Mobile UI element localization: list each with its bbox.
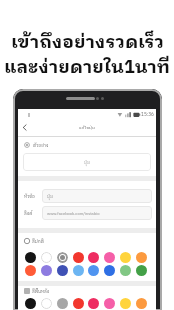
- staticText: สีพื้นหลัง: [32, 288, 50, 295]
- staticText: www.facebook.com/instabio: [47, 210, 100, 217]
- button[interactable]: [88, 298, 99, 309]
- button[interactable]: [104, 298, 115, 309]
- button[interactable]: [73, 265, 84, 276]
- button[interactable]: [57, 265, 68, 276]
- button[interactable]: [22, 124, 28, 131]
- button[interactable]: [88, 265, 99, 276]
- button[interactable]: [41, 265, 52, 276]
- button[interactable]: [88, 252, 99, 263]
- button[interactable]: ปุ่ม: [23, 153, 151, 171]
- staticText: ลิงค์: [24, 210, 33, 217]
- staticText: สีปกติ: [32, 238, 44, 245]
- staticText: ปุ่ม: [84, 159, 90, 166]
- button[interactable]: [136, 265, 147, 276]
- button[interactable]: www.facebook.com/instabio: [42, 206, 152, 220]
- button[interactable]: [136, 298, 147, 309]
- staticText: และง่ายดายใน1นาที: [4, 53, 170, 83]
- button[interactable]: [25, 252, 36, 263]
- staticText: แก้ไขปุ่ม: [79, 124, 95, 131]
- staticText: 15:36: [141, 111, 154, 119]
- button[interactable]: [104, 265, 115, 276]
- button[interactable]: [73, 298, 84, 309]
- button[interactable]: [57, 298, 68, 309]
- button[interactable]: [104, 252, 115, 263]
- button[interactable]: [73, 252, 84, 263]
- button[interactable]: [41, 252, 52, 263]
- button[interactable]: [25, 265, 36, 276]
- button[interactable]: [120, 298, 131, 309]
- button[interactable]: [25, 298, 36, 309]
- button[interactable]: [120, 265, 131, 276]
- button[interactable]: [41, 298, 52, 309]
- staticText: ปุ่ม: [47, 193, 53, 200]
- staticText: เข้าถึงอย่างรวดเร็ว: [11, 28, 164, 58]
- button[interactable]: [136, 252, 147, 263]
- staticText: หัวข้อ: [24, 193, 35, 200]
- staticText: ตัวอย่าง: [33, 142, 49, 149]
- button[interactable]: [120, 252, 131, 263]
- button[interactable]: ปุ่ม: [42, 189, 152, 203]
- button[interactable]: [57, 252, 68, 263]
